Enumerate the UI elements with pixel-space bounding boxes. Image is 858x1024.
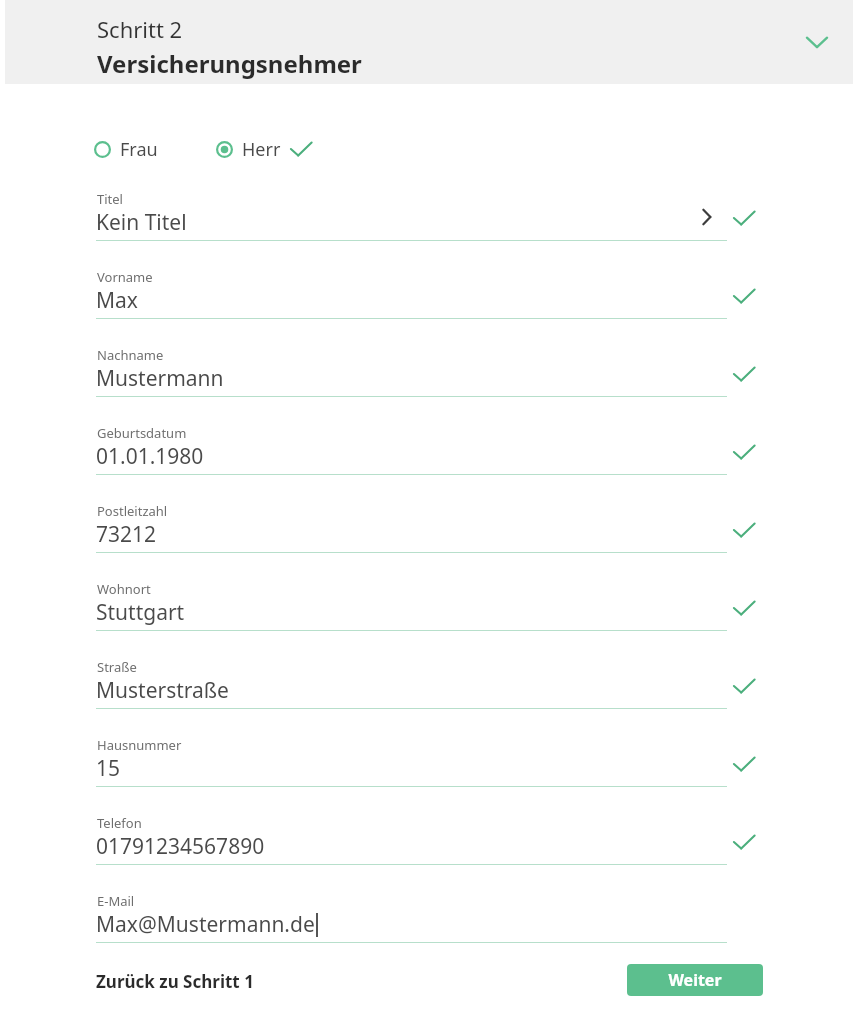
staticText: Weiter [668,969,722,991]
staticText: Straße [97,658,137,676]
staticText: Schritt 2 [97,14,183,44]
staticText: Hausnummer [97,736,182,754]
staticText: E-Mail [97,892,135,910]
staticText: Max [96,286,138,315]
button[interactable] [88,652,748,714]
staticText: Mustermann [96,364,224,393]
button[interactable] [88,730,748,792]
button[interactable]: Abschnitt einklappen [799,24,835,60]
staticText: Musterstraße [96,676,229,705]
staticText: Max@Mustermann.de [96,910,315,939]
button[interactable] [88,496,748,558]
button[interactable]: Zurück zu Schritt 1 [88,965,262,997]
button[interactable] [88,340,748,402]
button[interactable]: Herr [216,137,281,162]
button[interactable]: Weiter [627,964,763,996]
staticText: Versicherungsnehmer [97,47,362,80]
button[interactable]: Titel auswählen [694,204,720,230]
staticText: 01791234567890 [96,832,265,861]
staticText: Vorname [97,268,153,286]
staticText: Zurück zu Schritt 1 [96,970,254,993]
staticText: 01.01.1980 [96,442,204,471]
button[interactable] [88,574,748,636]
button[interactable] [88,184,748,246]
button[interactable] [88,262,748,324]
staticText: Geburtsdatum [97,424,187,442]
staticText: Frau [120,137,158,162]
button[interactable] [88,418,748,480]
staticText: Herr [242,137,281,162]
button[interactable]: Schritt 2 [5,0,853,84]
button[interactable] [88,808,748,870]
staticText: Stuttgart [96,598,185,627]
staticText: Kein Titel [96,208,187,237]
staticText: 15 [96,754,121,783]
staticText: Nachname [97,346,164,364]
button[interactable] [88,886,748,948]
staticText: Telefon [97,814,142,832]
staticText: Titel [97,190,123,208]
button[interactable]: Frau [94,137,162,162]
staticText: 73212 [96,520,157,549]
staticText: Wohnort [97,580,151,598]
staticText: Postleitzahl [97,502,168,520]
